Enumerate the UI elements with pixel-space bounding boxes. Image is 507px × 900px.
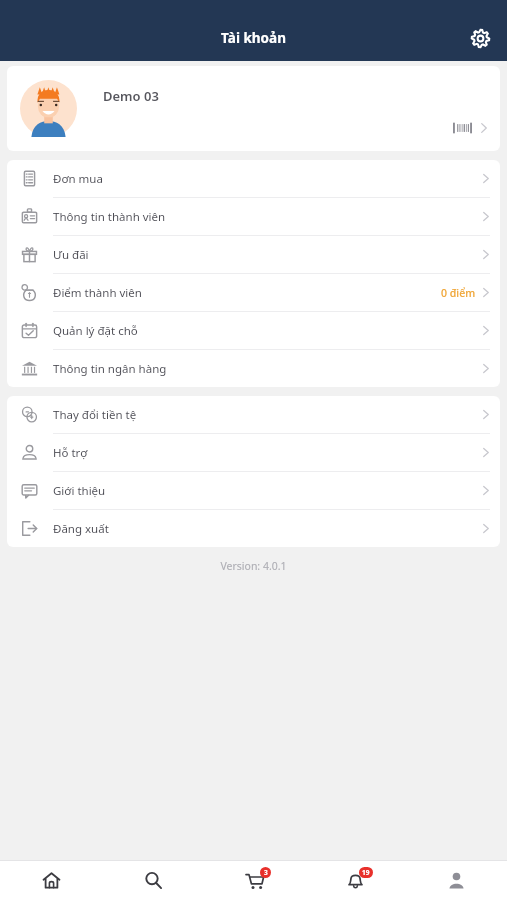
- button[interactable]: Cart: [204, 861, 305, 900]
- button[interactable]: Account: [406, 861, 507, 900]
- button[interactable]: Quản lý đặt chỗ: [7, 312, 500, 349]
- button[interactable]: Điểm thành viên: [7, 274, 500, 311]
- staticText: Hỗ trợ: [53, 445, 88, 461]
- staticText: Ưu đãi: [53, 247, 89, 263]
- button[interactable]: Thay đổi tiền tệ: [7, 396, 500, 433]
- staticText: 19: [362, 868, 370, 877]
- button[interactable]: Thông tin ngân hàng: [7, 350, 500, 387]
- button[interactable]: Đơn mua: [7, 160, 500, 197]
- staticText: Giới thiệu: [53, 483, 106, 499]
- button[interactable]: Giới thiệu: [7, 472, 500, 509]
- button[interactable]: Đăng xuất: [7, 510, 500, 547]
- button[interactable]: Thông tin thành viên: [7, 198, 500, 235]
- staticText: Quản lý đặt chỗ: [53, 323, 138, 339]
- staticText: 3: [264, 868, 268, 877]
- staticText: Thông tin ngân hàng: [53, 361, 167, 377]
- button[interactable]: Settings: [463, 21, 497, 55]
- button[interactable]: Ưu đãi: [7, 236, 500, 273]
- button[interactable]: Demo 03: [7, 66, 500, 151]
- button[interactable]: Search: [102, 861, 204, 900]
- staticText: Thông tin thành viên: [53, 209, 166, 225]
- button[interactable]: Hỗ trợ: [7, 434, 500, 471]
- staticText: 0 điểm: [441, 286, 476, 300]
- staticText: Tài khoản: [221, 29, 286, 47]
- staticText: Đơn mua: [53, 171, 103, 187]
- staticText: Demo 03: [103, 87, 159, 105]
- staticText: Đăng xuất: [53, 521, 109, 537]
- staticText: Thay đổi tiền tệ: [53, 407, 137, 423]
- staticText: Điểm thành viên: [53, 285, 142, 301]
- button[interactable]: Home: [0, 861, 102, 900]
- button[interactable]: Notifications: [305, 861, 406, 900]
- staticText: Version: 4.0.1: [0, 559, 507, 573]
